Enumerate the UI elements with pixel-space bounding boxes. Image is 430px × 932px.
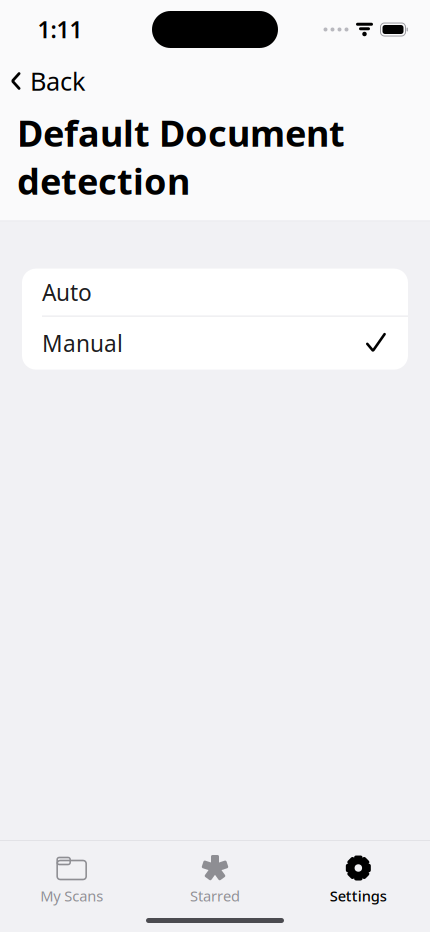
button[interactable]: Back <box>0 56 100 106</box>
staticText: Starred <box>190 886 240 905</box>
staticText: Back <box>30 64 86 98</box>
staticText: Manual <box>42 328 123 358</box>
button[interactable]: Manual <box>22 317 408 370</box>
button[interactable]: Starred <box>143 849 287 911</box>
button[interactable]: Settings <box>287 849 430 911</box>
staticText: 1:11 <box>37 14 82 44</box>
staticText: Settings <box>330 886 387 905</box>
staticText: My Scans <box>40 886 103 905</box>
staticText: Default Document detection <box>17 109 345 205</box>
button[interactable]: My Scans <box>0 849 143 911</box>
button[interactable]: Auto <box>22 269 408 316</box>
staticText: Auto <box>42 277 92 307</box>
